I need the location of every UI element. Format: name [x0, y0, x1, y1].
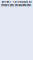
staticText: EXPERT TIPS GUIDE TO: [1, 0, 31, 3]
staticText: HOME ENTERTAINMENT: [1, 3, 32, 7]
